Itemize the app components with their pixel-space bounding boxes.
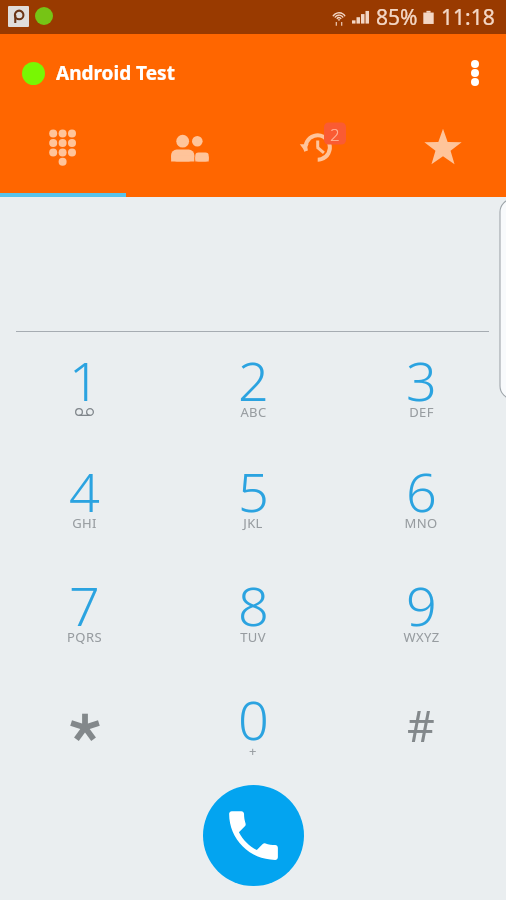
button[interactable]: 7 [0, 549, 168, 661]
button[interactable]: 3 [337, 324, 505, 436]
staticText: MNO [404, 514, 438, 532]
staticText: 7 [69, 568, 100, 642]
staticText: 2 [238, 343, 269, 417]
button[interactable]: More options [451, 34, 506, 111]
staticText: PQRS [67, 628, 102, 646]
staticText: JKL [243, 514, 263, 532]
staticText: WXYZ [403, 628, 440, 646]
button[interactable]: Dialpad [0, 111, 126, 197]
button[interactable]: 9 [337, 549, 505, 661]
staticText: + [249, 742, 257, 760]
button[interactable]: Favorites [379, 111, 506, 197]
staticText: 5 [238, 454, 269, 528]
staticText: 8 [238, 568, 269, 642]
button[interactable]: Contacts [126, 111, 252, 197]
staticText: 9 [406, 568, 437, 642]
staticText: GHI [72, 514, 97, 532]
staticText: 0 [238, 682, 269, 756]
button[interactable]: # [337, 663, 505, 775]
button[interactable]: Recent calls, 2 missed [252, 111, 379, 197]
button[interactable]: 2 [169, 324, 337, 436]
staticText: 11:18 [441, 3, 495, 32]
button[interactable]: 8 [169, 549, 337, 661]
staticText: 1 [69, 343, 100, 417]
button[interactable]: 4 [0, 435, 168, 547]
button[interactable] [0, 663, 168, 775]
staticText: Android Test [56, 60, 175, 86]
button[interactable]: Call [203, 785, 304, 886]
staticText: TUV [240, 628, 266, 646]
staticText: 2 [330, 123, 340, 145]
staticText: DEF [409, 403, 434, 421]
staticText: # [407, 696, 435, 755]
staticText: 3 [406, 343, 437, 417]
button[interactable]: 0 [169, 663, 337, 775]
button[interactable]: 5 [169, 435, 337, 547]
staticText: ABC [240, 403, 267, 421]
button[interactable]: 1 [0, 324, 168, 436]
staticText: 4 [69, 454, 100, 528]
staticText: 6 [406, 454, 437, 528]
button[interactable]: 6 [337, 435, 505, 547]
staticText: 85% [376, 3, 418, 32]
